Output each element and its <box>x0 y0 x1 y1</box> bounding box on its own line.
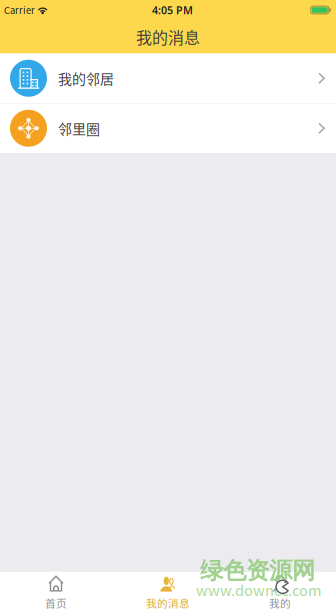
staticText: 首页 <box>45 595 67 610</box>
staticText: 我的 <box>269 595 291 610</box>
button[interactable]: 我的 <box>224 571 336 610</box>
staticText: 邻里圈 <box>58 118 100 138</box>
staticText: 我的消息 <box>146 595 190 610</box>
staticText: 我的消息 <box>136 25 200 48</box>
button[interactable]: 邻里圈 <box>0 103 336 153</box>
staticText: www.downcc.com <box>196 579 322 600</box>
staticText: 我的邻居 <box>58 68 114 88</box>
staticText: 4:05 PM <box>152 3 193 17</box>
staticText: 绿色资源网 <box>200 556 315 585</box>
button[interactable]: 我的邻居 <box>0 53 336 103</box>
button[interactable]: 首页 <box>0 571 112 610</box>
button[interactable]: 我的消息 <box>112 571 224 610</box>
staticText: Carrier <box>4 3 35 17</box>
